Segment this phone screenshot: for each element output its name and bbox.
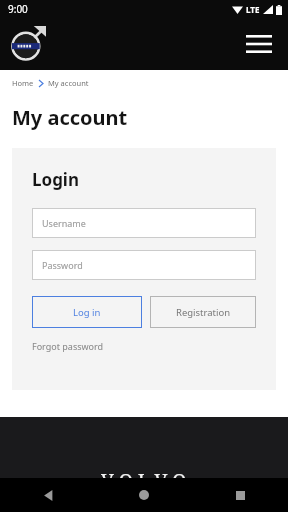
staticText: Home [12, 78, 34, 88]
button[interactable]: Back [0, 478, 96, 512]
button[interactable]: Open menu [242, 27, 276, 61]
staticText: V O L V O [101, 468, 187, 478]
staticText: My account [48, 78, 89, 88]
button[interactable]: Log in [32, 296, 142, 328]
staticText: Forgot password [32, 340, 104, 352]
button[interactable]: Home [96, 478, 192, 512]
staticText: Username [42, 217, 86, 229]
button[interactable]: Registration [150, 296, 256, 328]
button[interactable]: Password [32, 250, 256, 280]
button[interactable]: Username [32, 208, 256, 238]
staticText: LTE [246, 4, 260, 15]
staticText: 9:00 [8, 2, 28, 16]
staticText: Registration [176, 306, 231, 319]
button[interactable]: Recent apps [192, 478, 288, 512]
staticText: My account [12, 104, 128, 131]
button[interactable]: Forgot password [32, 340, 104, 352]
button[interactable]: Volvo home [8, 24, 48, 64]
staticText: Log in [73, 306, 101, 319]
staticText: Password [42, 259, 83, 271]
button[interactable]: Home [12, 78, 34, 88]
staticText: Login [32, 168, 80, 191]
